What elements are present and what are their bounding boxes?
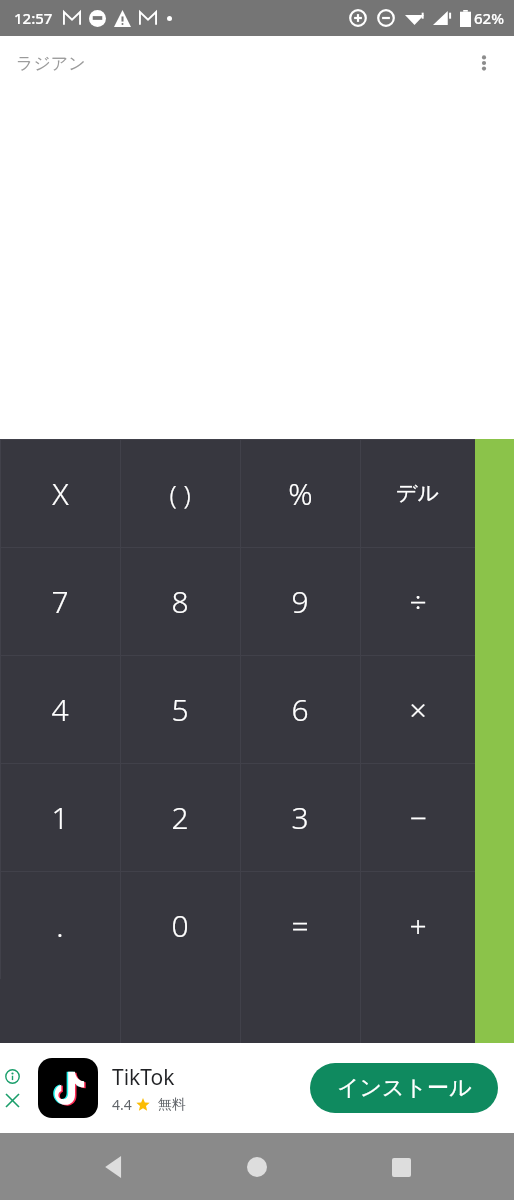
staticText: 3 [291,797,309,838]
staticText: 62% [474,8,504,28]
button[interactable]: Close ad [3,1091,21,1109]
button[interactable]: 4 [0,655,120,763]
button[interactable]: ラジアン [0,47,94,80]
staticText: 2 [171,797,189,838]
staticText: インストール [337,1074,472,1102]
staticText: TikTok [112,1063,175,1092]
staticText: ÷ [409,581,427,622]
staticText: 9 [291,581,309,622]
button[interactable]: = [240,871,360,979]
staticText: デル [396,480,439,506]
button[interactable]: ( ) [120,439,240,547]
button[interactable]: インストール [310,1063,498,1113]
button[interactable]: % [240,439,360,547]
staticText: 12:57 [14,8,53,28]
staticText: ( ) [169,476,191,511]
button[interactable]: X [0,439,120,547]
button[interactable]: Home [227,1137,287,1197]
button[interactable]: 9 [240,547,360,655]
button[interactable]: 1 [0,763,120,871]
button[interactable]: More options [462,41,506,85]
button[interactable]: 8 [120,547,240,655]
button[interactable]: 5 [120,655,240,763]
staticText: 8 [171,581,189,622]
button[interactable]: デル [360,439,475,547]
button[interactable]: TikTok [38,1058,186,1118]
staticText: + [409,905,427,946]
button[interactable]: 7 [0,547,120,655]
button[interactable]: 0 [120,871,240,979]
button[interactable]: Ad info [3,1067,21,1085]
staticText: 4 [51,689,69,730]
staticText: X [52,473,69,514]
button[interactable]: . [0,871,120,979]
staticText: . [56,905,64,946]
button[interactable]: × [360,655,475,763]
button[interactable]: Recent apps [371,1137,431,1197]
staticText: 5 [171,689,189,730]
staticText: ラジアン [16,53,86,74]
button[interactable]: + [360,871,475,979]
staticText: 6 [291,689,309,730]
staticText: 4.4 [112,1095,132,1114]
staticText: 0 [171,905,189,946]
button[interactable]: − [360,763,475,871]
button[interactable]: 6 [240,655,360,763]
staticText: 7 [51,581,69,622]
button[interactable]: ÷ [360,547,475,655]
button[interactable]: 3 [240,763,360,871]
button[interactable]: Back [84,1137,144,1197]
staticText: 無料 [158,1096,186,1114]
staticText: % [288,473,313,514]
staticText: = [291,905,309,946]
staticText: 1 [51,797,69,838]
staticText: × [409,689,427,730]
staticText: − [409,797,427,838]
button[interactable]: 2 [120,763,240,871]
